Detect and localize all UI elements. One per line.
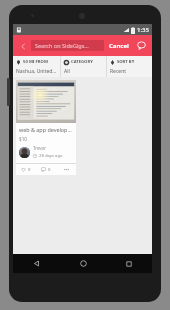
button[interactable]: Home: [60, 254, 106, 273]
staticText: $10: [19, 136, 27, 142]
staticText: Cancel: [109, 42, 129, 50]
button[interactable]: More options: [56, 164, 76, 175]
button[interactable]: Recent apps: [106, 254, 152, 273]
button[interactable]: 0: [16, 164, 36, 175]
staticText: Trevor: [33, 145, 47, 151]
button[interactable]: SORT BY: [107, 56, 152, 77]
button[interactable]: Back: [17, 40, 29, 52]
staticText: 0: [28, 167, 31, 173]
staticText: SORT BY: [117, 59, 135, 65]
button[interactable]: Cancel: [108, 40, 130, 52]
staticText: 0: [48, 167, 51, 173]
button[interactable]: 50 MI FROM: [13, 56, 60, 77]
staticText: CATEGORY: [71, 59, 93, 65]
staticText: All: [64, 68, 70, 75]
button[interactable]: Search on SideGigs...: [31, 40, 104, 51]
staticText: Nashua, United...: [16, 68, 57, 75]
staticText: 1:35: [137, 26, 149, 34]
staticText: 28 days ago: [39, 153, 63, 159]
staticText: web & app development: [19, 126, 73, 133]
button[interactable]: Trevor: [19, 145, 73, 159]
button[interactable]: Messages: [135, 39, 148, 52]
button[interactable]: web & app development: [16, 80, 76, 175]
button[interactable]: CATEGORY: [61, 56, 106, 77]
button[interactable]: 0: [36, 164, 56, 175]
staticText: 50 MI FROM: [23, 59, 48, 65]
staticText: Recent: [110, 68, 127, 75]
button[interactable]: Back: [13, 254, 60, 273]
staticText: Search on SideGigs...: [35, 42, 89, 49]
